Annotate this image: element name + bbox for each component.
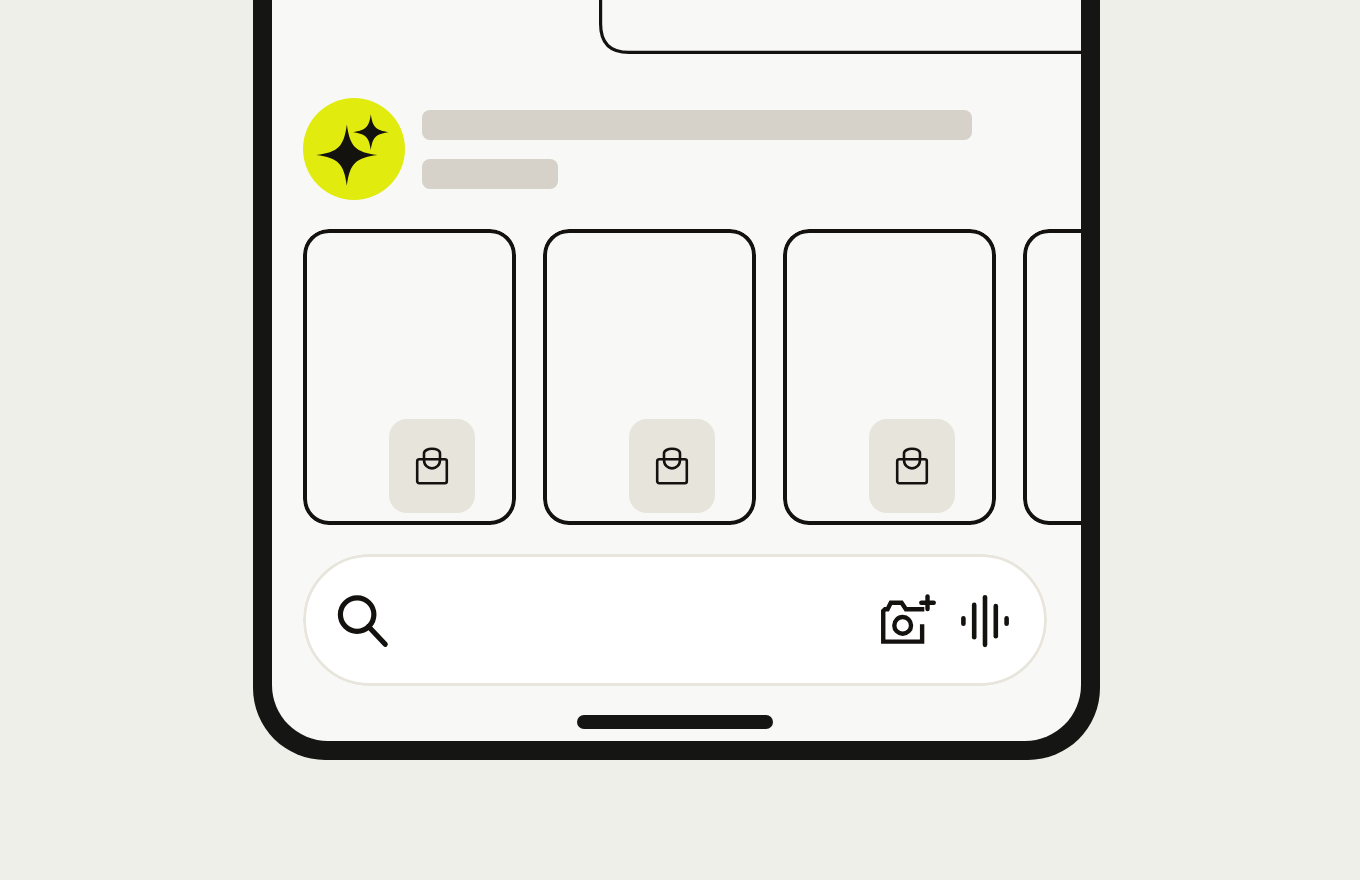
button[interactable]: Product xyxy=(543,229,756,525)
button[interactable]: Product xyxy=(783,229,996,525)
button[interactable]: Search with camera xyxy=(873,586,941,654)
button[interactable]: Product xyxy=(1023,229,1081,525)
button[interactable]: AI assistant xyxy=(303,98,405,200)
button[interactable]: Search xyxy=(303,554,1047,686)
button[interactable]: Voice search xyxy=(951,586,1019,654)
button[interactable]: Suggestion card xyxy=(599,0,1081,54)
button[interactable]: Product xyxy=(303,229,516,525)
other: Search xyxy=(335,593,389,647)
